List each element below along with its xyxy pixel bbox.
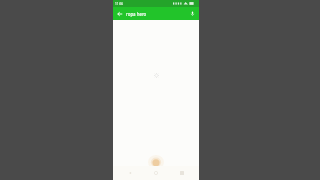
- staticText: 11:56: [115, 2, 124, 6]
- button[interactable]: ropa hero: [126, 7, 188, 20]
- button[interactable]: Back: [115, 9, 124, 18]
- button[interactable]: Home: [147, 166, 165, 180]
- button[interactable]: Recent apps: [173, 166, 191, 180]
- staticText: ropa hero: [126, 11, 147, 17]
- button[interactable]: Voice search: [188, 9, 197, 18]
